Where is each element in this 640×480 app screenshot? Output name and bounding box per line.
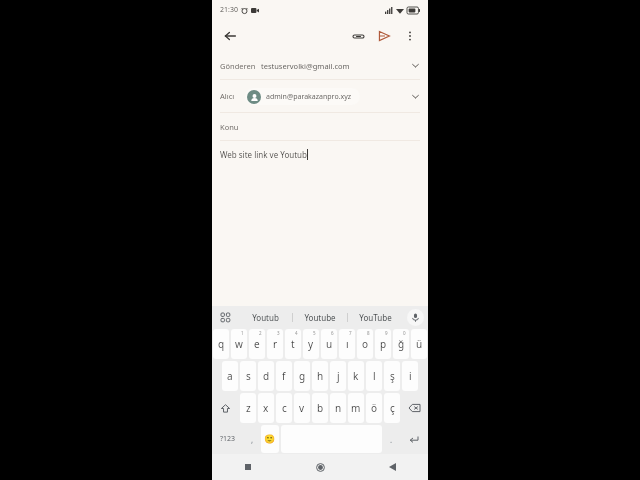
staticText: t [291,337,295,351]
staticText: c [282,401,287,415]
button[interactable]: ü [411,329,427,359]
staticText: ö [371,401,378,415]
staticText: 🙂 [264,434,276,445]
button[interactable]: Clipboard [212,306,238,328]
staticText: h [317,369,324,383]
button[interactable]: v [294,393,310,423]
button[interactable]: a [222,361,238,391]
staticText: ğ [398,337,405,351]
button[interactable]: d [258,361,274,391]
staticText: . [390,434,393,445]
button[interactable]: p [375,329,391,359]
button[interactable]: ?123 [213,425,243,453]
staticText: Youtub [252,312,279,323]
staticText: j [337,369,340,383]
button[interactable]: c [276,393,292,423]
button[interactable]: Home [284,454,356,480]
staticText: e [254,337,260,351]
button[interactable]: Send [374,26,394,46]
staticText: Alıcı [220,91,235,101]
button[interactable]: Web site link ve Youtub [212,141,428,306]
staticText: g [299,369,306,383]
button[interactable]: x [258,393,274,423]
staticText: 2 [259,330,262,336]
button[interactable]: Period [384,425,398,453]
staticText: z [246,401,251,415]
button[interactable]: Voice input [402,306,428,328]
staticText: 9 [385,330,388,336]
staticText: ç [390,401,395,415]
staticText: v [299,401,305,415]
button[interactable]: r [267,329,283,359]
staticText: 1 [241,330,244,336]
button[interactable]: Shift [213,393,238,423]
button[interactable]: n [330,393,346,423]
staticText: 0 [403,330,406,336]
staticText: ü [416,337,423,351]
button[interactable]: 🙂 [261,425,279,453]
button[interactable]: More options [400,26,420,46]
staticText: ?123 [220,434,236,444]
staticText: Konu [220,122,239,132]
staticText: d [263,369,270,383]
button[interactable]: m [348,393,364,423]
button[interactable]: u [321,329,337,359]
staticText: 6 [331,330,334,336]
button[interactable]: Alıcı [212,80,428,112]
button[interactable]: o [357,329,373,359]
staticText: f [282,369,286,383]
staticText: r [273,337,278,351]
button[interactable]: k [348,361,364,391]
button[interactable]: Back [220,26,240,46]
button[interactable]: i [402,361,418,391]
staticText: 3 [277,330,280,336]
staticText: Youtube [304,312,336,323]
button[interactable]: admin@parakazanpro.xyz [245,88,360,105]
staticText: b [317,401,324,415]
button[interactable]: j [330,361,346,391]
button[interactable]: h [312,361,328,391]
staticText: o [362,337,369,351]
button[interactable]: Attach file [348,26,368,46]
button[interactable]: ı [339,329,355,359]
button[interactable]: Youtub [238,306,292,328]
button[interactable]: ş [384,361,400,391]
button[interactable]: Back [356,454,428,480]
button[interactable]: t [285,329,301,359]
staticText: ı [346,337,349,351]
button[interactable]: w [231,329,247,359]
button[interactable]: g [294,361,310,391]
staticText: 8 [367,330,370,336]
button[interactable]: Gönderen [212,52,428,79]
staticText: a [227,369,233,383]
button[interactable]: Enter [400,425,427,453]
button[interactable]: ğ [393,329,409,359]
staticText: w [235,337,243,351]
staticText: n [335,401,342,415]
button[interactable]: s [240,361,256,391]
staticText: k [353,369,359,383]
staticText: i [409,369,412,383]
button[interactable]: e [249,329,265,359]
button[interactable]: q [213,329,229,359]
button[interactable]: Backspace [402,393,427,423]
button[interactable]: Recents [212,454,284,480]
button[interactable]: Youtube [293,306,347,328]
button[interactable]: z [240,393,256,423]
button[interactable]: ö [366,393,382,423]
button[interactable]: l [366,361,382,391]
staticText: 4 [295,330,298,336]
button[interactable]: y [303,329,319,359]
button[interactable]: b [312,393,328,423]
button[interactable]: f [276,361,292,391]
staticText: m [351,401,361,415]
staticText: testuservolki@gmail.com [261,61,350,71]
button[interactable]: ç [384,393,400,423]
staticText: Gönderen [220,61,256,71]
button[interactable]: Konu [212,113,428,140]
button[interactable]: Comma [245,425,259,453]
button[interactable]: YouTube [348,306,402,328]
staticText: admin@parakazanpro.xyz [266,92,352,102]
staticText: Web site link ve Youtub [220,149,307,160]
